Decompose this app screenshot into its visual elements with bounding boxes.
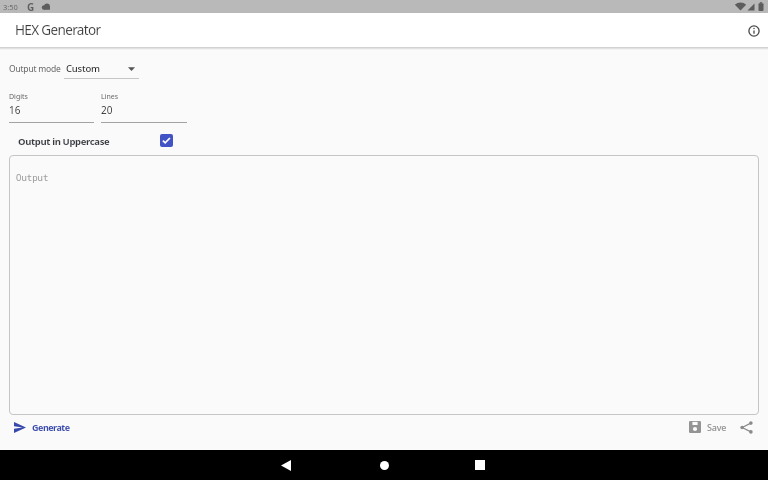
staticText: Output — [16, 171, 49, 183]
button[interactable]: Generate — [14, 417, 70, 437]
staticText: 3:50 — [3, 2, 18, 12]
staticText: Output in Uppercase — [18, 135, 110, 148]
button[interactable]: Output in Uppercase — [12, 130, 177, 151]
staticText: Generate — [32, 421, 70, 433]
button[interactable] — [747, 24, 760, 37]
staticText: G — [27, 0, 35, 13]
button[interactable] — [276, 455, 296, 475]
staticText: Lines — [101, 92, 119, 102]
staticText: 16 — [9, 103, 21, 117]
staticText: Custom — [66, 62, 100, 75]
staticText: 20 — [101, 103, 113, 117]
button[interactable]: Custom — [64, 57, 140, 79]
button[interactable] — [738, 419, 754, 435]
staticText: HEX Generator — [15, 21, 101, 39]
button[interactable]: Save — [689, 417, 727, 437]
staticText: Save — [707, 421, 727, 433]
staticText: Digits — [9, 92, 28, 102]
staticText: Output mode — [9, 63, 61, 75]
button[interactable] — [374, 455, 394, 475]
button[interactable] — [470, 455, 490, 475]
